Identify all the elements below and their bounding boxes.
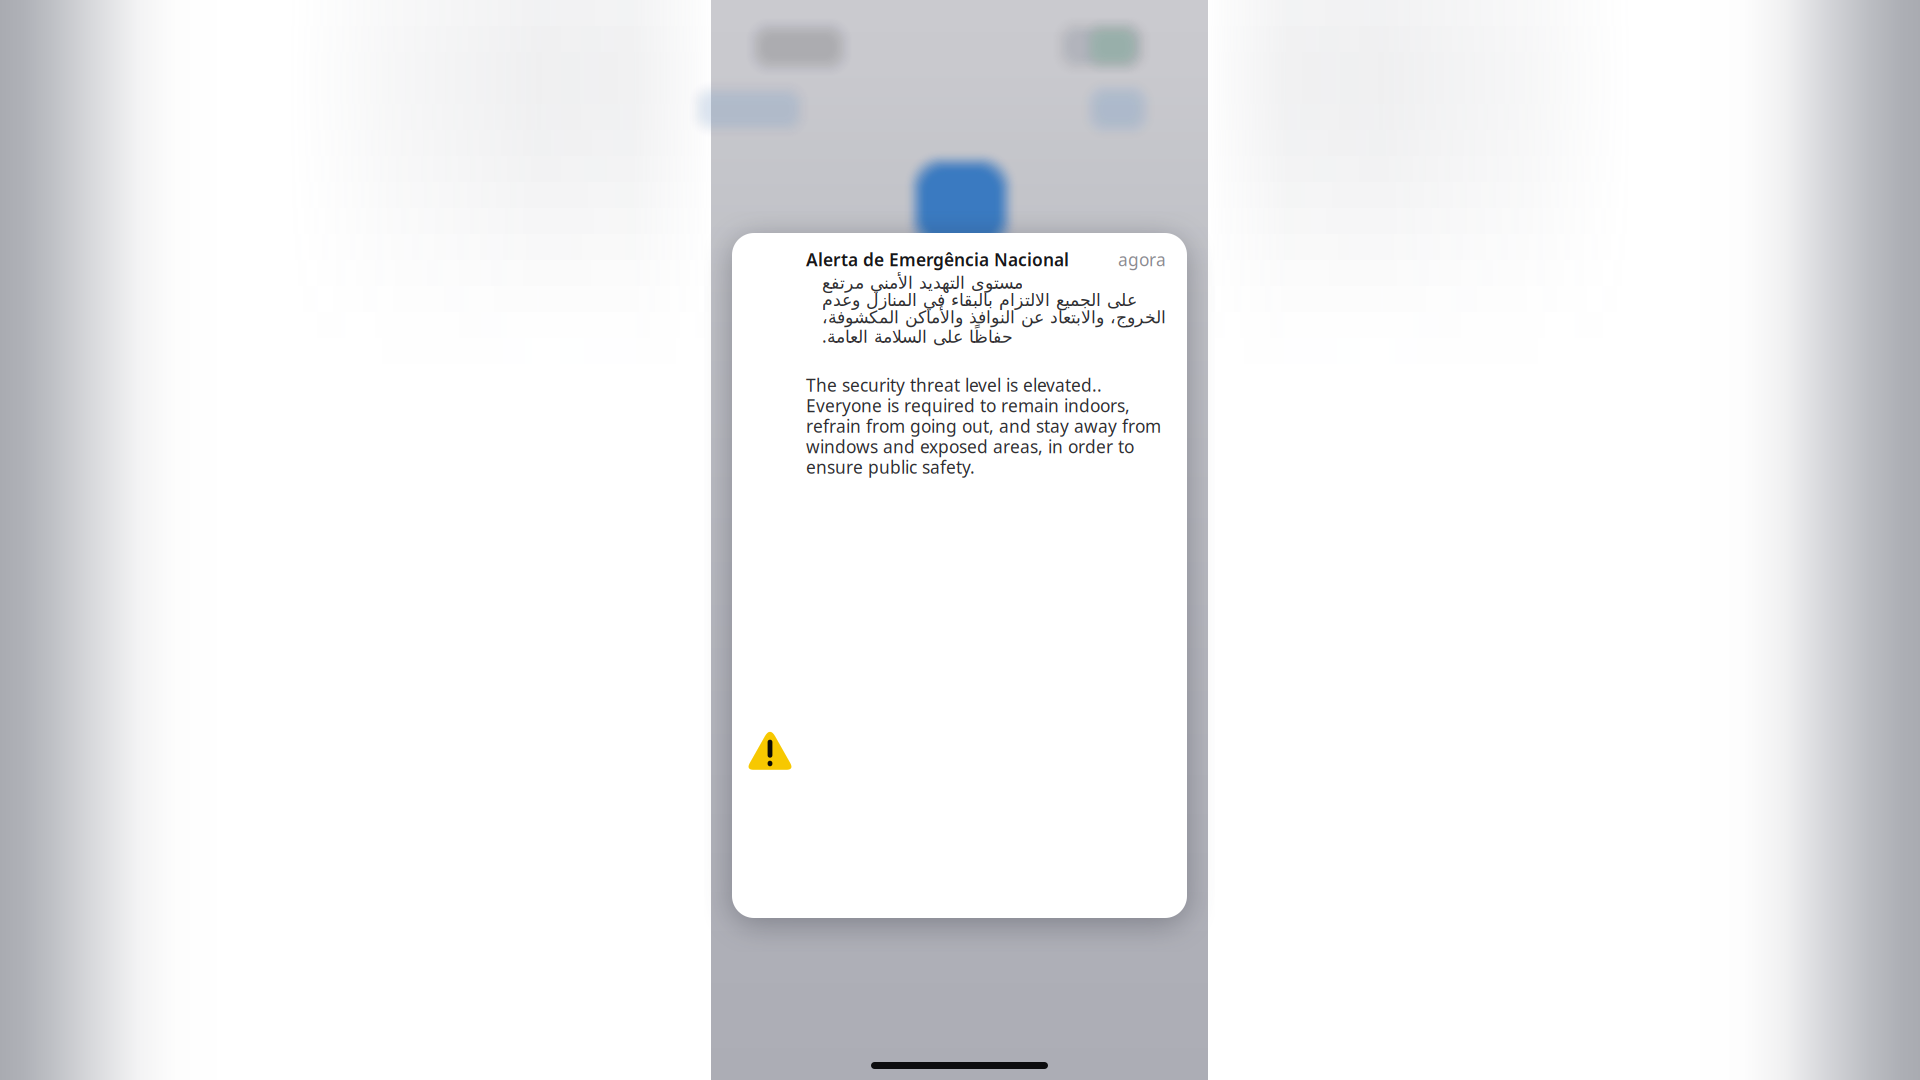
staticText: Alerta de Emergência Nacional [806, 248, 1069, 271]
staticText: agora [1118, 248, 1166, 271]
staticText: The security threat level is elevated.. … [806, 374, 1161, 479]
staticText: مستوى التهديد الأمني مرتفع على الجميع ال… [822, 273, 1166, 347]
button[interactable]: Alerta de Emergência Nacional [732, 233, 1187, 918]
